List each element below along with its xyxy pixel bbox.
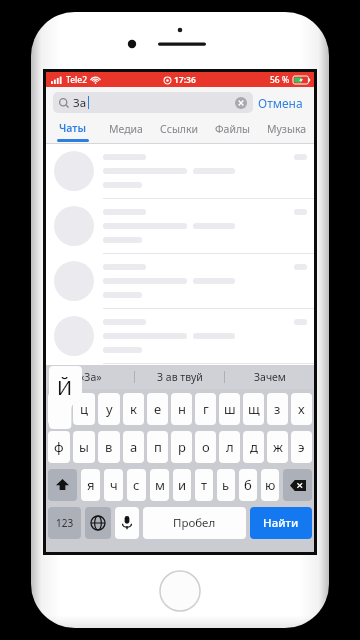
button[interactable]: Чаты — [46, 118, 99, 144]
staticText: Медиа — [109, 122, 143, 136]
button[interactable]: ц — [73, 393, 95, 425]
button[interactable]: я — [81, 469, 100, 501]
button[interactable]: к — [123, 393, 144, 425]
button[interactable]: Отмена — [253, 92, 308, 114]
staticText: в — [105, 438, 113, 456]
staticText: 56 % — [270, 74, 290, 86]
staticText: э — [298, 438, 305, 456]
button[interactable]: Ссылки — [152, 118, 206, 144]
button[interactable]: Change keyboard — [85, 507, 111, 539]
button[interactable]: Медиа — [99, 118, 152, 144]
staticText: Найти — [263, 515, 299, 531]
button[interactable]: э — [291, 431, 312, 463]
button[interactable]: Backspace — [283, 469, 312, 501]
button[interactable]: и — [173, 469, 191, 501]
staticText: п — [154, 438, 162, 456]
button[interactable]: у — [98, 393, 120, 425]
staticText: г — [203, 400, 209, 418]
button[interactable]: м — [150, 469, 169, 501]
staticText: 123 — [56, 516, 74, 530]
button[interactable]: ь — [217, 469, 235, 501]
staticText: л — [226, 438, 234, 456]
button[interactable]: За — [53, 92, 253, 113]
button[interactable]: з — [267, 393, 288, 425]
button[interactable]: Clear — [235, 97, 247, 109]
button[interactable]: Пробел — [143, 507, 246, 539]
staticText: с — [133, 476, 140, 494]
staticText: ч — [110, 476, 118, 494]
staticText: ц — [80, 400, 88, 418]
button[interactable]: 123 — [48, 507, 81, 539]
staticText: з — [274, 400, 281, 418]
staticText: д — [250, 438, 258, 456]
staticText: З ав твуй — [157, 370, 203, 384]
button[interactable]: п — [147, 431, 168, 463]
staticText: а — [130, 438, 138, 456]
button[interactable]: е — [147, 393, 168, 425]
button[interactable]: З ав твуй — [135, 365, 224, 389]
button[interactable]: л — [219, 431, 240, 463]
staticText: ы — [79, 438, 89, 456]
button[interactable] — [46, 254, 314, 308]
button[interactable]: ч — [104, 469, 123, 501]
staticText: Й — [57, 374, 73, 401]
staticText: Музыка — [267, 122, 307, 136]
staticText: щ — [248, 400, 260, 418]
staticText: м — [155, 476, 165, 494]
staticText: ш — [224, 400, 236, 418]
button[interactable]: й — [48, 393, 70, 425]
button[interactable]: д — [243, 431, 264, 463]
button[interactable]: Зачем — [225, 365, 314, 389]
button[interactable]: ю — [261, 469, 279, 501]
button[interactable]: в — [98, 431, 120, 463]
button[interactable]: ф — [48, 431, 70, 463]
button[interactable]: ж — [267, 431, 288, 463]
button[interactable]: т — [195, 469, 213, 501]
staticText: т — [201, 476, 208, 494]
staticText: е — [154, 400, 162, 418]
staticText: Чаты — [59, 121, 87, 135]
staticText: н — [178, 400, 186, 418]
staticText: Отмена — [258, 95, 303, 111]
staticText: Зачем — [254, 370, 286, 384]
button[interactable]: х — [291, 393, 312, 425]
button[interactable]: Dictate — [115, 507, 139, 539]
staticText: Tele2 — [66, 74, 88, 86]
button[interactable]: щ — [243, 393, 264, 425]
staticText: б — [244, 476, 252, 494]
staticText: к — [130, 400, 137, 418]
staticText: Ссылки — [160, 122, 199, 136]
staticText: х — [298, 400, 305, 418]
staticText: ж — [273, 438, 283, 456]
button[interactable]: с — [127, 469, 146, 501]
button[interactable] — [46, 309, 314, 363]
button[interactable]: «За» — [46, 365, 134, 389]
button[interactable]: г — [195, 393, 216, 425]
button[interactable]: Shift — [48, 469, 77, 501]
staticText: 17:36 — [174, 74, 196, 86]
button[interactable]: ы — [73, 431, 95, 463]
button[interactable]: а — [123, 431, 144, 463]
staticText: о — [202, 438, 210, 456]
staticText: ю — [265, 476, 276, 494]
staticText: у — [106, 400, 113, 418]
staticText: и — [178, 476, 187, 494]
button[interactable]: Музыка — [260, 118, 314, 144]
button[interactable] — [46, 199, 314, 253]
button[interactable]: р — [171, 431, 192, 463]
staticText: Файлы — [215, 122, 251, 136]
button[interactable]: б — [239, 469, 257, 501]
staticText: я — [87, 476, 95, 494]
staticText: ь — [222, 476, 230, 494]
staticText: «За» — [79, 370, 102, 384]
button[interactable]: ш — [219, 393, 240, 425]
button[interactable] — [46, 144, 314, 198]
button[interactable]: о — [195, 431, 216, 463]
button[interactable]: н — [171, 393, 192, 425]
button[interactable]: Найти — [250, 507, 312, 539]
staticText: р — [178, 438, 186, 456]
button[interactable]: Файлы — [206, 118, 260, 144]
staticText: ф — [54, 438, 64, 456]
staticText: Пробел — [173, 515, 216, 531]
